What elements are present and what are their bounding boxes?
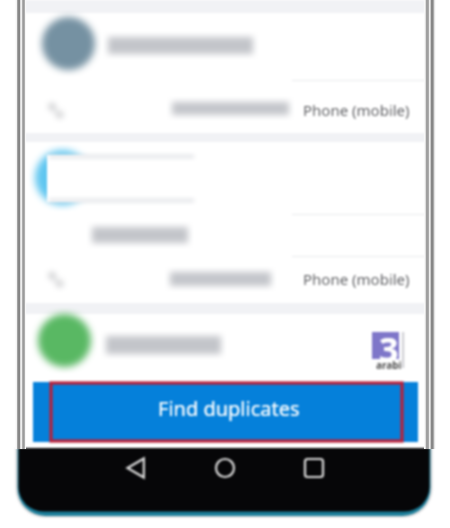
staticText: Find duplicates [158, 395, 300, 422]
button[interactable]: Back [115, 446, 159, 490]
staticText: Phone (mobile) [303, 269, 410, 289]
button[interactable]: Find duplicates [33, 382, 418, 442]
staticText: 3 [379, 326, 399, 368]
button[interactable]: Recent apps [292, 446, 336, 490]
staticText: Phone (mobile) [303, 100, 410, 120]
button[interactable]: Home [203, 446, 247, 490]
staticText: arabi [376, 358, 402, 372]
